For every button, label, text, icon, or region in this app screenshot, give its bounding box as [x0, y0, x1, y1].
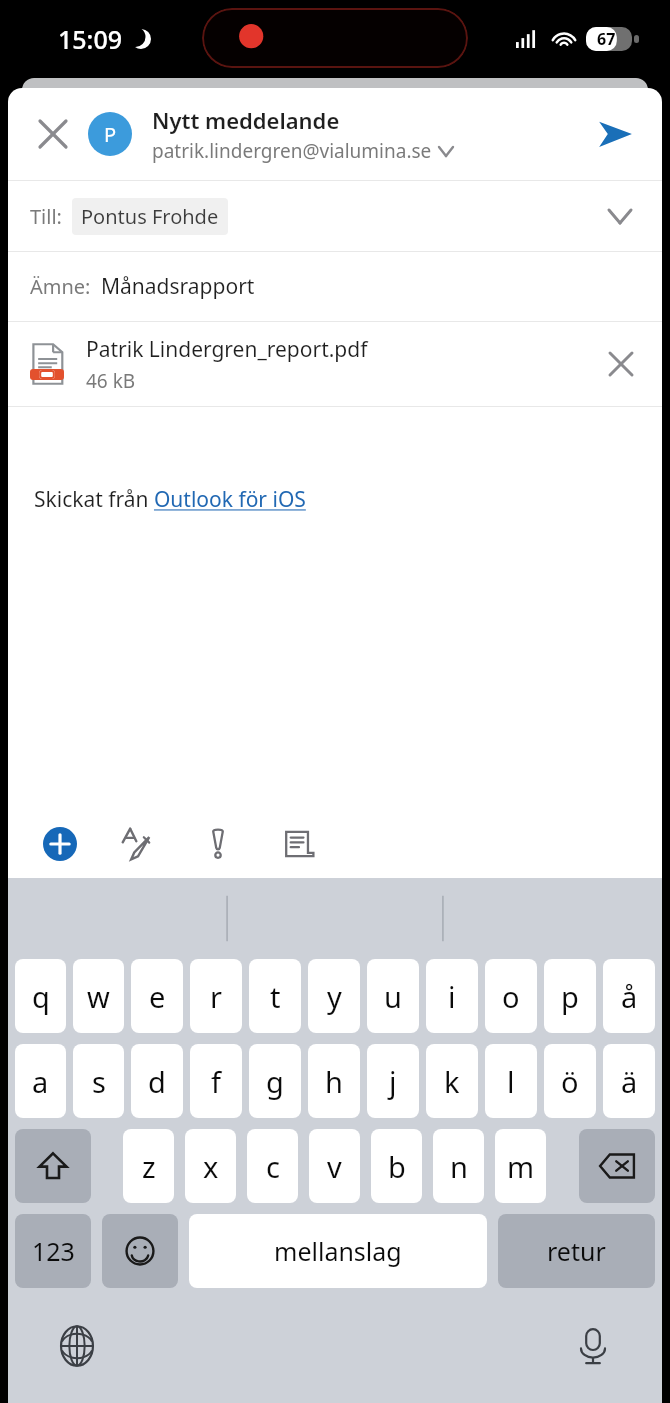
button[interactable]: Till: — [8, 181, 662, 251]
button[interactable]: ä — [603, 1044, 655, 1118]
button[interactable]: Close — [30, 111, 76, 157]
button[interactable]: q — [15, 959, 66, 1033]
button[interactable]: Shift — [15, 1129, 91, 1203]
staticText: e — [149, 977, 166, 1016]
staticText: t — [270, 977, 281, 1016]
staticText: Till: — [30, 203, 62, 230]
button[interactable]: Patrik Lindergren_report.pdf — [8, 322, 662, 406]
button[interactable]: g — [249, 1044, 301, 1118]
staticText: c — [266, 1147, 280, 1186]
button[interactable]: k — [426, 1044, 478, 1118]
button[interactable]: u — [367, 959, 419, 1033]
button[interactable]: P — [88, 112, 132, 156]
staticText: 46 kB — [86, 368, 136, 394]
button[interactable]: Ämne: — [8, 252, 662, 321]
button[interactable]: 123 — [15, 1214, 91, 1288]
staticText: ä — [621, 1062, 638, 1101]
staticText: x — [203, 1147, 219, 1186]
staticText: v — [327, 1147, 342, 1186]
button[interactable]: Skickat från Outlook för iOS — [8, 407, 662, 810]
button[interactable]: t — [249, 959, 301, 1033]
staticText: n — [450, 1147, 468, 1186]
button[interactable]: v — [309, 1129, 360, 1203]
staticText: Skickat från Outlook för iOS — [34, 485, 306, 514]
button[interactable]: å — [603, 959, 655, 1033]
staticText: Pontus Frohde — [81, 203, 219, 230]
button[interactable]: m — [495, 1129, 546, 1203]
staticText: Ämne: — [30, 273, 91, 300]
button[interactable]: Emoji — [102, 1214, 178, 1288]
staticText: ö — [561, 1062, 579, 1101]
button[interactable]: ö — [544, 1044, 596, 1118]
button[interactable]: l — [485, 1044, 537, 1118]
button[interactable]: d — [131, 1044, 183, 1118]
button[interactable]: mellanslag — [189, 1214, 487, 1288]
staticText: z — [142, 1147, 156, 1186]
staticText: p — [561, 977, 579, 1016]
staticText: j — [389, 1062, 397, 1101]
staticText: r — [210, 977, 222, 1016]
staticText: Patrik Lindergren_report.pdf — [86, 335, 368, 364]
staticText: m — [507, 1147, 535, 1186]
button[interactable]: p — [544, 959, 596, 1033]
button[interactable]: f — [190, 1044, 242, 1118]
staticText: u — [384, 977, 402, 1016]
button[interactable]: e — [131, 959, 183, 1033]
staticText: d — [148, 1062, 166, 1101]
button[interactable]: Importance — [196, 822, 240, 866]
button[interactable]: Send — [590, 109, 640, 159]
staticText: a — [32, 1062, 49, 1101]
staticText: f — [211, 1062, 221, 1101]
button[interactable]: b — [371, 1129, 422, 1203]
staticText: Nytt meddelande — [152, 105, 340, 135]
staticText: 15:09 — [58, 22, 123, 56]
staticText: Månadsrapport — [101, 272, 255, 301]
button[interactable]: h — [308, 1044, 360, 1118]
button[interactable]: Backspace — [579, 1129, 655, 1203]
staticText: P — [104, 121, 117, 148]
staticText: patrik.lindergren@vialumina.se — [152, 138, 432, 164]
button[interactable]: retur — [498, 1214, 655, 1288]
staticText: retur — [547, 1234, 606, 1268]
button[interactable]: o — [485, 959, 537, 1033]
button[interactable]: Signature — [276, 821, 322, 867]
staticText: b — [388, 1147, 406, 1186]
staticText: i — [448, 977, 456, 1016]
button[interactable]: z — [123, 1129, 174, 1203]
staticText: l — [507, 1062, 515, 1101]
button[interactable]: Format text — [114, 821, 160, 867]
staticText: s — [92, 1062, 106, 1101]
staticText: g — [266, 1062, 284, 1101]
button[interactable]: a — [15, 1044, 66, 1118]
staticText: q — [32, 977, 50, 1016]
button[interactable]: s — [73, 1044, 124, 1118]
button[interactable]: Dictate — [564, 1317, 622, 1375]
button[interactable]: w — [73, 959, 124, 1033]
staticText: å — [621, 977, 638, 1016]
button[interactable]: c — [247, 1129, 298, 1203]
staticText: w — [87, 977, 110, 1016]
button[interactable]: r — [190, 959, 242, 1033]
staticText: 123 — [32, 1234, 75, 1268]
staticText: o — [502, 977, 520, 1016]
staticText: y — [327, 977, 342, 1016]
button[interactable]: n — [433, 1129, 484, 1203]
button[interactable]: Remove attachment — [598, 341, 644, 387]
button[interactable]: j — [367, 1044, 419, 1118]
button[interactable]: Change keyboard — [48, 1317, 106, 1375]
button[interactable]: x — [185, 1129, 236, 1203]
staticText: mellanslag — [274, 1234, 402, 1268]
button[interactable]: Add attachment — [38, 822, 82, 866]
button[interactable]: y — [308, 959, 360, 1033]
button[interactable]: Expand recipients — [600, 196, 640, 236]
staticText: h — [325, 1062, 343, 1101]
staticText: k — [444, 1062, 460, 1101]
button[interactable]: i — [426, 959, 478, 1033]
staticText: 67 — [597, 28, 616, 50]
